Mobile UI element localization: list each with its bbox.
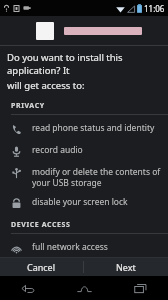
button[interactable]: Back <box>0 276 56 300</box>
button[interactable]: Recent apps <box>112 276 168 300</box>
button[interactable]: read phone status and identity <box>0 115 168 137</box>
button[interactable]: modify or delete the contents of your US… <box>0 159 168 189</box>
staticText: record audio <box>32 144 83 156</box>
button[interactable]: Next <box>84 258 168 276</box>
button[interactable]: full network access <box>0 234 168 257</box>
staticText: PRIVACY <box>11 101 45 111</box>
staticText: full network access <box>32 241 108 253</box>
button[interactable]: Cancel <box>0 258 83 276</box>
button[interactable]: record audio <box>0 137 168 159</box>
staticText: will get access to: <box>7 79 85 92</box>
staticText: disable your screen lock <box>32 196 128 208</box>
staticText: Next <box>116 261 136 273</box>
staticText: Do you want to install this application?… <box>7 51 162 77</box>
button[interactable]: disable your screen lock <box>0 189 168 211</box>
button[interactable]: Home <box>56 276 112 300</box>
staticText: DEVICE ACCESS <box>11 220 71 230</box>
staticText: modify or delete the contents of your US… <box>32 166 162 188</box>
staticText: 11:06 <box>144 3 165 14</box>
staticText: Cancel <box>27 261 56 273</box>
staticText: read phone status and identity <box>32 122 155 134</box>
